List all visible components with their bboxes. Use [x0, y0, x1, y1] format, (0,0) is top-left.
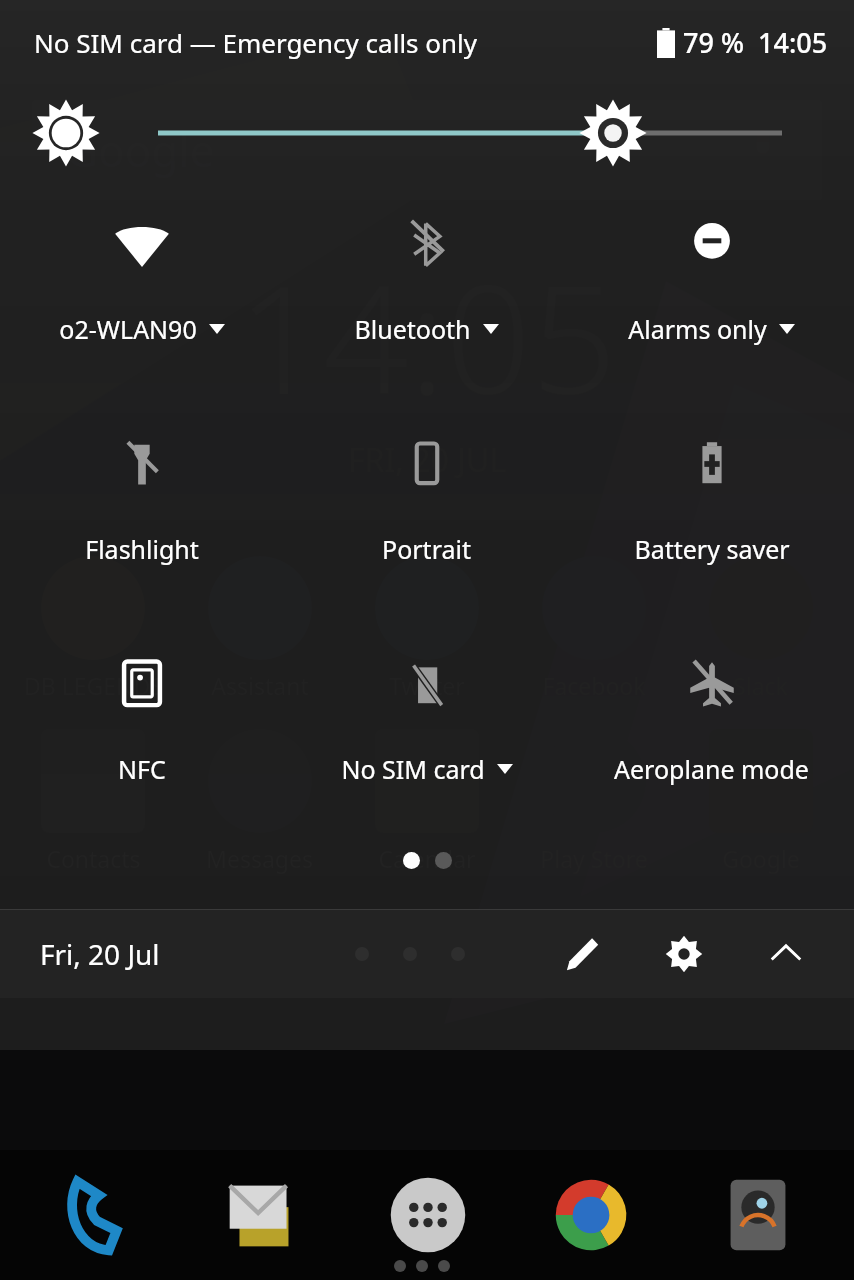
button[interactable]: Contacts	[10, 729, 176, 874]
staticText: Google	[66, 120, 215, 180]
staticText: Fri, 20 Jul	[40, 935, 160, 973]
staticText: Bluetooth	[354, 312, 471, 346]
staticText: o2-WLAN90	[59, 312, 197, 346]
button[interactable]	[510, 1166, 675, 1264]
button[interactable]: Alarms only	[569, 208, 854, 350]
staticText: No SIM card — Emergency calls only	[34, 25, 478, 60]
staticText: Portrait	[382, 532, 471, 566]
staticText: Aeroplane mode	[614, 752, 809, 786]
button[interactable]	[180, 1166, 345, 1264]
button[interactable]	[14, 1166, 180, 1264]
button[interactable]	[180, 1166, 345, 1264]
button[interactable]	[675, 1166, 840, 1264]
staticText: 14:05	[758, 24, 828, 61]
button[interactable]: o2-WLAN90	[0, 208, 284, 350]
button[interactable]: Slack	[677, 556, 844, 701]
button[interactable]: Calendar	[343, 729, 510, 874]
button[interactable]: Aeroplane mode	[569, 648, 854, 790]
button[interactable]: Brightness	[0, 98, 854, 168]
button[interactable]: Play Store	[510, 729, 677, 874]
staticText: NFC	[118, 752, 166, 786]
button[interactable]	[14, 1166, 180, 1264]
button[interactable]: Portrait	[284, 428, 569, 570]
staticText: DB LEGENDS	[24, 670, 163, 701]
button[interactable]: Twitter	[343, 556, 510, 701]
button[interactable]: Google	[677, 729, 844, 874]
button[interactable]: Battery saver	[569, 428, 854, 570]
staticText: Slack	[733, 670, 788, 701]
button[interactable]	[510, 1166, 675, 1264]
staticText: Calendar	[378, 843, 476, 874]
button[interactable]: Settings	[654, 924, 714, 984]
button[interactable]	[345, 1166, 510, 1264]
button[interactable]: Assistant	[176, 556, 343, 701]
button[interactable]: DB LEGENDS	[10, 556, 176, 701]
button[interactable]: Facebook	[510, 556, 677, 701]
staticText: Battery saver	[634, 532, 790, 566]
button[interactable]: Edit	[552, 924, 612, 984]
button[interactable]	[675, 1166, 840, 1264]
staticText: FRI, 20 JUL	[0, 438, 854, 482]
button[interactable]	[345, 1166, 510, 1264]
staticText: Twitter	[389, 670, 465, 701]
button[interactable]: NFC	[0, 648, 284, 790]
staticText: Alarms only	[628, 312, 767, 346]
button[interactable]: Bluetooth	[284, 208, 569, 350]
button[interactable]: Flashlight	[0, 428, 284, 570]
staticText: No SIM card	[341, 752, 485, 786]
button[interactable]: No SIM card	[284, 648, 569, 790]
button[interactable]: Collapse	[756, 924, 816, 984]
staticText: 79 %	[683, 24, 744, 61]
staticText: 14:05	[0, 234, 854, 438]
staticText: Flashlight	[85, 532, 199, 566]
